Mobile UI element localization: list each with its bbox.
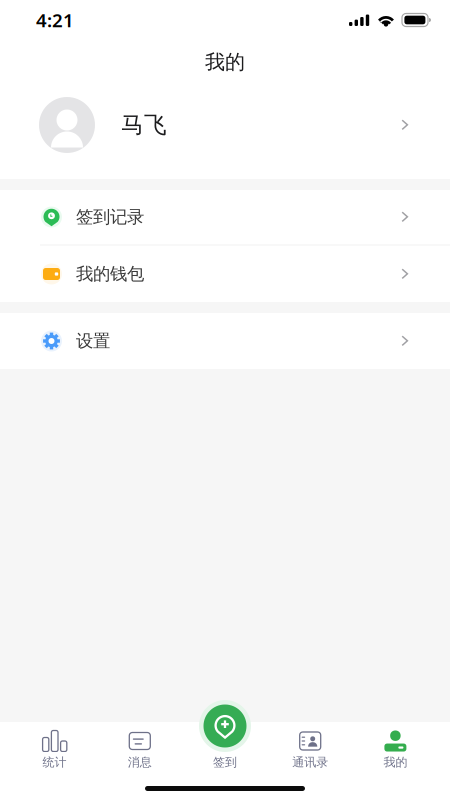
button[interactable]: 消息 xyxy=(97,722,182,800)
button[interactable]: 通讯录 xyxy=(268,722,353,800)
staticText: 4:21 xyxy=(36,8,74,32)
staticText: 设置 xyxy=(76,330,110,352)
button[interactable]: 我的 xyxy=(353,722,438,800)
button[interactable]: 设置 xyxy=(0,313,450,369)
button[interactable]: 签到记录 xyxy=(0,190,450,246)
button[interactable]: 马飞 xyxy=(0,84,450,179)
staticText: 通讯录 xyxy=(292,755,328,770)
button[interactable]: 签到 xyxy=(199,700,251,752)
staticText: 消息 xyxy=(128,755,152,770)
staticText: 签到记录 xyxy=(76,206,144,228)
staticText: 我的钱包 xyxy=(76,263,144,285)
staticText: 签到 xyxy=(213,755,237,770)
button[interactable]: 我的钱包 xyxy=(0,246,450,302)
button[interactable]: 签到 xyxy=(182,722,268,800)
staticText: 我的 xyxy=(383,755,407,770)
staticText: 统计 xyxy=(43,755,67,770)
button[interactable]: 统计 xyxy=(12,722,97,800)
staticText: 马飞 xyxy=(121,111,167,139)
staticText: 我的 xyxy=(205,50,245,74)
